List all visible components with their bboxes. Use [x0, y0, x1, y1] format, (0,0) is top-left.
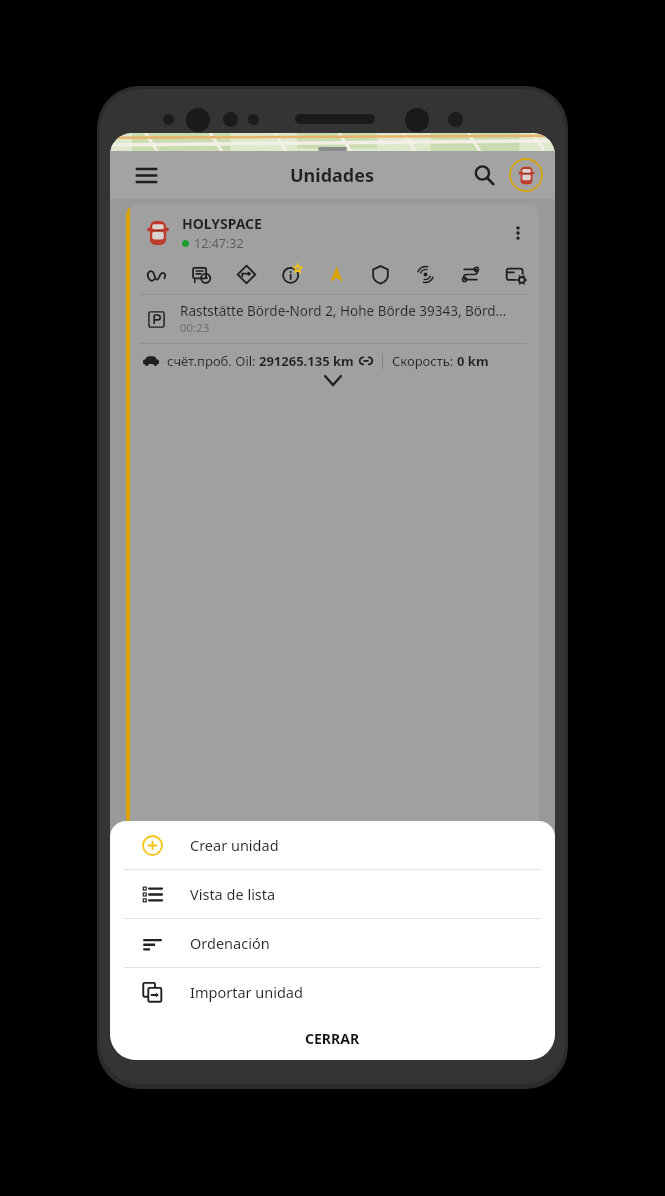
staticText: 00:23: [180, 320, 210, 336]
button[interactable]: Ordenación: [110, 919, 555, 967]
button[interactable]: Crear unidad: [110, 821, 555, 869]
staticText: Crear unidad: [190, 835, 279, 855]
staticText: HOLYSPACE: [182, 214, 262, 233]
button[interactable]: REPORT: [185, 258, 217, 290]
button[interactable]: Menu: [132, 161, 160, 189]
button[interactable]: NAV_AMBER: [320, 258, 352, 290]
button[interactable]: PANEL: [499, 258, 531, 290]
button[interactable]: ROUTE: [454, 258, 486, 290]
button[interactable]: Vista de lista: [110, 870, 555, 918]
button[interactable]: GEO: [230, 258, 262, 290]
button[interactable]: CERRAR: [110, 1016, 555, 1060]
button[interactable]: TRACK: [140, 258, 172, 290]
staticText: Raststätte Börde-Nord 2, Hohe Börde 3934…: [180, 302, 507, 320]
staticText: Ordenación: [190, 933, 270, 953]
button[interactable]: Search: [470, 161, 498, 189]
staticText: 291265.135 km: [259, 352, 354, 370]
staticText: 12:47:32: [194, 235, 244, 252]
button[interactable]: Importar unidad: [110, 968, 555, 1016]
button[interactable]: SHIELD: [364, 258, 396, 290]
button[interactable]: SIGNAL: [409, 258, 441, 290]
button[interactable]: HOLYSPACE: [126, 204, 539, 1060]
staticText: Скорость:: [392, 352, 457, 370]
button[interactable]: More options: [505, 220, 531, 246]
staticText: Unidades: [290, 163, 375, 188]
staticText: Importar unidad: [190, 982, 303, 1002]
staticText: CERRAR: [305, 1029, 360, 1048]
staticText: счёт.проб. Oil:: [167, 352, 259, 370]
button[interactable]: INFO_STAR: [275, 258, 307, 290]
staticText: 0 km: [457, 352, 489, 370]
button[interactable]: Expand: [126, 370, 539, 390]
button[interactable]: Profile: [509, 158, 543, 192]
staticText: Vista de lista: [190, 884, 276, 904]
